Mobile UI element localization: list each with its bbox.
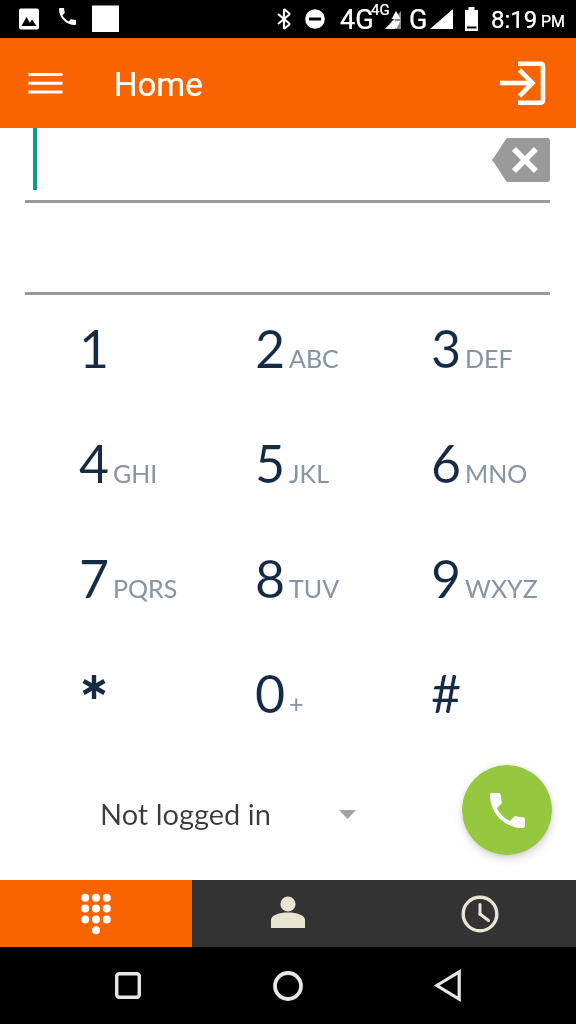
staticText: WXYZ xyxy=(465,573,538,603)
staticText: PM xyxy=(541,12,566,31)
staticText: # xyxy=(431,662,462,724)
button[interactable]: Back xyxy=(412,947,484,1024)
button[interactable] xyxy=(6,635,182,750)
button[interactable] xyxy=(182,405,358,520)
button[interactable]: Recent apps xyxy=(92,947,164,1024)
button[interactable] xyxy=(358,405,534,520)
staticText: 4G xyxy=(340,4,374,36)
button[interactable] xyxy=(182,635,358,750)
button[interactable] xyxy=(6,520,182,635)
staticText: MNO xyxy=(465,458,528,488)
button[interactable] xyxy=(182,520,358,635)
staticText: 8:19 xyxy=(491,6,538,34)
button[interactable]: Recent calls xyxy=(384,880,576,947)
button[interactable] xyxy=(358,635,534,750)
button[interactable] xyxy=(6,290,182,405)
staticText: PQRS xyxy=(113,573,178,603)
staticText: 7 xyxy=(79,547,110,609)
button[interactable] xyxy=(358,520,534,635)
staticText: DEF xyxy=(465,343,513,373)
staticText: G xyxy=(409,4,428,36)
button[interactable]: Open navigation menu xyxy=(0,38,90,128)
staticText: 8 xyxy=(255,547,286,609)
button[interactable]: Sign in xyxy=(502,38,576,128)
staticText: Home xyxy=(114,65,203,104)
staticText: 9 xyxy=(431,547,462,609)
button[interactable]: Delete xyxy=(476,128,564,192)
staticText: Not logged in xyxy=(100,796,271,831)
staticText: 3 xyxy=(431,317,462,379)
staticText: JKL xyxy=(289,458,329,488)
staticText: TUV xyxy=(289,573,340,603)
button[interactable]: Call xyxy=(462,765,552,855)
button[interactable]: Contacts xyxy=(192,880,384,947)
staticText: + xyxy=(289,688,304,718)
staticText: 4 xyxy=(79,432,110,494)
staticText: 6 xyxy=(431,432,462,494)
staticText: GHI xyxy=(113,458,158,488)
staticText: 5 xyxy=(255,432,286,494)
button[interactable]: Home xyxy=(252,947,324,1024)
staticText: 1 xyxy=(79,317,110,379)
button[interactable] xyxy=(6,405,182,520)
staticText: 4G xyxy=(371,1,390,19)
button[interactable] xyxy=(358,290,534,405)
staticText: 0 xyxy=(255,662,286,724)
button[interactable]: Not logged in xyxy=(88,778,368,842)
staticText: 2 xyxy=(255,317,286,379)
button[interactable] xyxy=(182,290,358,405)
staticText: ABC xyxy=(289,343,339,373)
button[interactable]: Dialpad xyxy=(0,880,192,947)
